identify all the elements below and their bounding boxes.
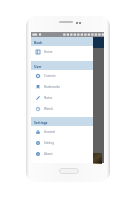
button[interactable]: Bookmarks: [31, 81, 93, 92]
staticText: Watch: [44, 107, 53, 111]
staticText: Notes: [44, 96, 53, 100]
staticText: General: [44, 130, 56, 134]
button[interactable]: Watch: [31, 103, 93, 114]
button[interactable]: General: [31, 126, 93, 137]
staticText: Bookmarks: [44, 85, 60, 89]
staticText: User: [34, 64, 42, 68]
button[interactable]: Connect: [31, 70, 93, 81]
button[interactable]: Setting: [31, 137, 93, 148]
staticText: About: [44, 152, 53, 156]
staticText: Setting: [44, 141, 54, 145]
staticText: Book: [34, 40, 43, 44]
button[interactable]: Home: [31, 46, 93, 57]
button[interactable]: Notes: [31, 92, 93, 103]
staticText: Home: [44, 50, 53, 54]
staticText: Settings: [34, 120, 48, 124]
button[interactable]: About: [31, 148, 93, 159]
staticText: Connect: [44, 74, 56, 78]
